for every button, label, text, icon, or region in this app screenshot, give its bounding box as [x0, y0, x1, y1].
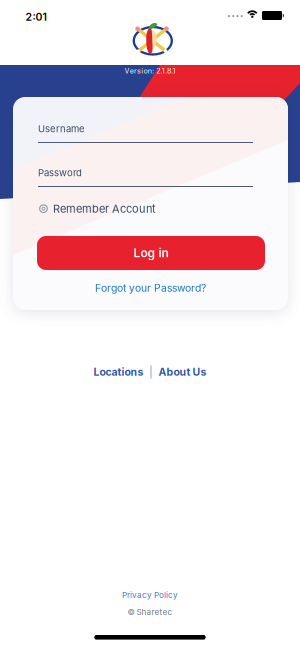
- staticText: 2:01: [25, 11, 46, 23]
- button[interactable]: Remember Account: [39, 202, 156, 215]
- button[interactable]: Password: [13, 141, 288, 191]
- staticText: Forgot your Password?: [95, 282, 206, 294]
- staticText: Privacy Policy: [122, 590, 178, 600]
- button[interactable]: Privacy Policy: [0, 590, 300, 600]
- button[interactable]: About Us: [158, 366, 206, 378]
- button[interactable]: Forgot your Password?: [13, 281, 288, 295]
- staticText: © Sharetec: [127, 607, 172, 617]
- staticText: Locations: [93, 366, 143, 378]
- button[interactable]: Locations: [93, 366, 143, 378]
- staticText: Log in: [133, 246, 168, 260]
- staticText: Remember Account: [53, 202, 156, 215]
- button[interactable]: Log in: [37, 236, 265, 270]
- staticText: Username: [38, 123, 85, 134]
- staticText: About Us: [158, 366, 206, 378]
- staticText: Password: [38, 167, 82, 178]
- button[interactable]: Username: [13, 97, 288, 147]
- staticText: Version: 2.1.8.1: [124, 67, 175, 75]
